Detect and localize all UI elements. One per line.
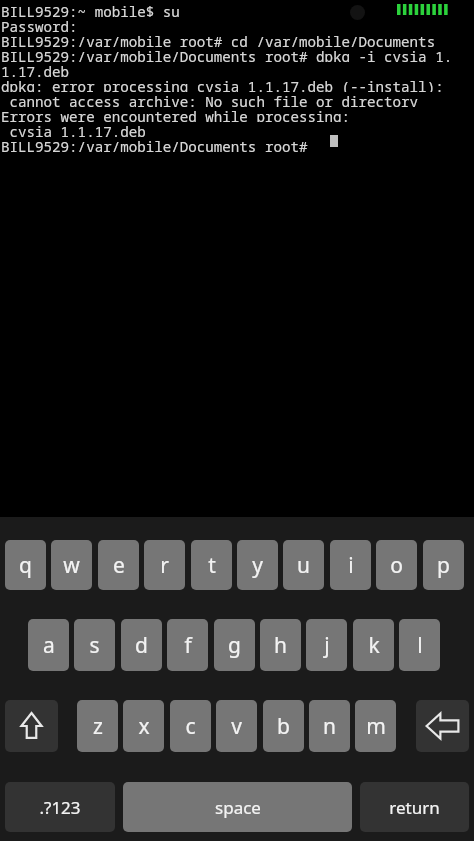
staticText: c bbox=[185, 712, 196, 741]
staticText: d bbox=[135, 631, 148, 660]
staticText: n bbox=[323, 712, 336, 741]
button[interactable]: m bbox=[355, 700, 396, 752]
staticText: f bbox=[184, 631, 192, 660]
staticText: z bbox=[93, 712, 103, 741]
staticText: y bbox=[252, 551, 263, 580]
staticText: m bbox=[366, 712, 386, 741]
staticText: v bbox=[231, 712, 242, 741]
button[interactable]: e bbox=[98, 540, 139, 590]
button[interactable]: o bbox=[376, 540, 417, 590]
button[interactable]: d bbox=[121, 619, 162, 671]
button[interactable]: b bbox=[263, 700, 304, 752]
button[interactable]: t bbox=[191, 540, 232, 590]
button[interactable]: j bbox=[306, 619, 347, 671]
button[interactable]: l bbox=[399, 619, 440, 671]
button[interactable]: h bbox=[260, 619, 301, 671]
other: Battery level bbox=[397, 4, 450, 15]
button[interactable]: v bbox=[216, 700, 257, 752]
staticText: BILL9529:~ mobile$ su bbox=[1, 2, 180, 17]
staticText: i bbox=[348, 551, 354, 580]
staticText: 1.17.deb bbox=[1, 62, 70, 77]
staticText: q bbox=[19, 551, 32, 580]
button[interactable]: BILL9529:~ mobile$ su bbox=[0, 0, 474, 517]
staticText: w bbox=[63, 551, 80, 580]
button[interactable]: r bbox=[144, 540, 185, 590]
button[interactable]: s bbox=[74, 619, 115, 671]
button[interactable]: k bbox=[353, 619, 394, 671]
button[interactable]: Backspace bbox=[416, 700, 469, 752]
staticText: u bbox=[297, 551, 310, 580]
staticText: BILL9529:/var/mobile root# cd /var/mobil… bbox=[1, 32, 436, 47]
button[interactable]: u bbox=[283, 540, 324, 590]
staticText: b bbox=[277, 712, 290, 741]
staticText: .?123 bbox=[39, 796, 81, 819]
staticText: cannot access archive: No such file or d… bbox=[1, 92, 419, 107]
button[interactable]: n bbox=[309, 700, 350, 752]
staticText: l bbox=[417, 631, 423, 660]
button[interactable]: g bbox=[214, 619, 255, 671]
staticText: k bbox=[368, 631, 380, 660]
staticText: Errors were encountered while processing… bbox=[1, 107, 351, 122]
staticText: a bbox=[43, 631, 55, 660]
staticText: o bbox=[390, 551, 403, 580]
button[interactable]: .?123 bbox=[5, 782, 115, 832]
button[interactable]: w bbox=[51, 540, 92, 590]
button[interactable]: x bbox=[123, 700, 164, 752]
staticText: x bbox=[138, 712, 150, 741]
staticText: s bbox=[89, 631, 100, 660]
staticText: g bbox=[228, 631, 241, 660]
button[interactable]: y bbox=[237, 540, 278, 590]
button[interactable]: return bbox=[360, 782, 469, 832]
staticText: p bbox=[437, 551, 450, 580]
button[interactable]: i bbox=[330, 540, 371, 590]
staticText: Password: bbox=[1, 17, 78, 32]
button[interactable]: space bbox=[123, 782, 352, 832]
button[interactable]: z bbox=[77, 700, 118, 752]
staticText: t bbox=[208, 551, 216, 580]
button[interactable]: p bbox=[423, 540, 464, 590]
staticText: e bbox=[113, 551, 125, 580]
staticText: j bbox=[324, 631, 330, 660]
button[interactable]: f bbox=[167, 619, 208, 671]
staticText: h bbox=[274, 631, 287, 660]
button[interactable]: q bbox=[5, 540, 46, 590]
staticText: return bbox=[389, 796, 440, 819]
button[interactable]: Shift bbox=[5, 700, 58, 752]
staticText: dpkg: error processing cysia_1.1.17.deb … bbox=[1, 77, 444, 92]
staticText: cysia_1.1.17.deb bbox=[1, 122, 146, 137]
staticText: BILL9529:/var/mobile/Documents root# bbox=[1, 137, 316, 152]
button[interactable]: c bbox=[170, 700, 211, 752]
staticText: r bbox=[160, 551, 169, 580]
staticText: space bbox=[215, 796, 261, 819]
button[interactable]: a bbox=[28, 619, 69, 671]
staticText: BILL9529:/var/mobile/Documents root# dpk… bbox=[1, 47, 453, 62]
